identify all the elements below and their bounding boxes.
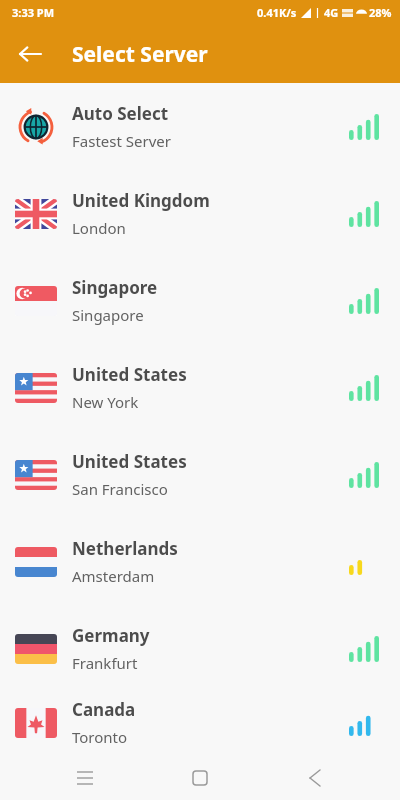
staticText: Netherlands <box>72 537 178 560</box>
staticText: Fastest Server <box>72 131 171 151</box>
staticText: 4G <box>324 5 339 20</box>
button[interactable]: United Kingdom <box>0 170 400 257</box>
staticText: Germany <box>72 624 150 647</box>
button[interactable]: Recents <box>55 755 115 800</box>
staticText: United Kingdom <box>72 189 210 212</box>
staticText: Auto Select <box>72 102 169 125</box>
staticText: 28% <box>369 5 392 20</box>
button[interactable]: Netherlands <box>0 518 400 605</box>
button[interactable]: Back <box>285 755 345 800</box>
staticText: 3:33 PM <box>12 5 55 20</box>
staticText: Frankfurt <box>72 653 138 673</box>
button[interactable]: United States <box>0 431 400 518</box>
button[interactable]: United States <box>0 344 400 431</box>
staticText: 0.41K/s <box>257 5 297 20</box>
staticText: Singapore <box>72 276 158 299</box>
button[interactable]: Back <box>8 32 52 76</box>
staticText: United States <box>72 363 187 386</box>
button[interactable]: Canada <box>0 692 400 753</box>
button[interactable]: Auto Select <box>0 83 400 170</box>
staticText: Canada <box>72 698 136 721</box>
staticText: New York <box>72 392 139 412</box>
button[interactable]: Home <box>170 755 230 800</box>
staticText: United States <box>72 450 187 473</box>
staticText: Amsterdam <box>72 566 155 586</box>
staticText: San Francisco <box>72 479 168 499</box>
button[interactable]: Singapore <box>0 257 400 344</box>
staticText: Toronto <box>72 727 128 747</box>
staticText: London <box>72 218 126 238</box>
staticText: Singapore <box>72 305 144 325</box>
button[interactable]: Germany <box>0 605 400 692</box>
staticText: Select Server <box>72 40 208 69</box>
